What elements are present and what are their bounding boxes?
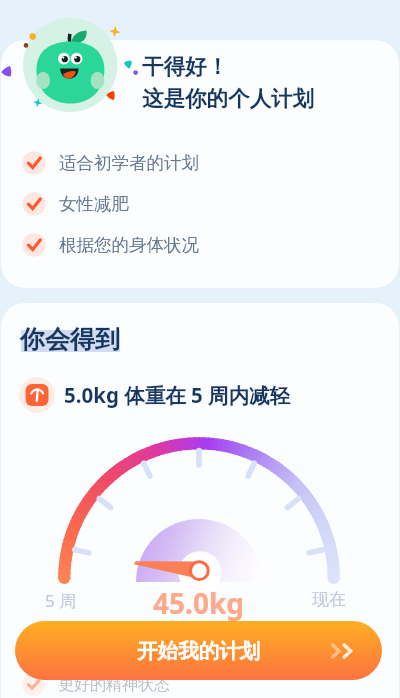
other: Weight <box>19 377 55 413</box>
staticText: 你会得到 <box>20 324 120 355</box>
staticText: 这是你的个人计划 <box>142 85 314 112</box>
other: Continue <box>329 638 355 664</box>
staticText: 根据您的身体状况 <box>59 234 199 256</box>
staticText: 女性减肥 <box>59 193 129 215</box>
staticText: 适合初学者的计划 <box>59 152 199 174</box>
button[interactable]: 适合初学者的计划 <box>1 146 399 180</box>
staticText: 现在 <box>312 589 346 610</box>
staticText: 5.0kg 体重在 5 周内减轻 <box>64 381 291 409</box>
button[interactable]: 开始我的计划 <box>15 621 382 680</box>
button[interactable]: 女性减肥 <box>1 187 399 221</box>
staticText: 干得好！ <box>142 53 228 80</box>
staticText: 45.0kg <box>153 584 244 622</box>
staticText: 更好的精神状态 <box>58 675 170 695</box>
staticText: 开始我的计划 <box>137 638 260 664</box>
staticText: 5 周 <box>45 589 77 612</box>
button[interactable]: 根据您的身体状况 <box>1 228 399 262</box>
